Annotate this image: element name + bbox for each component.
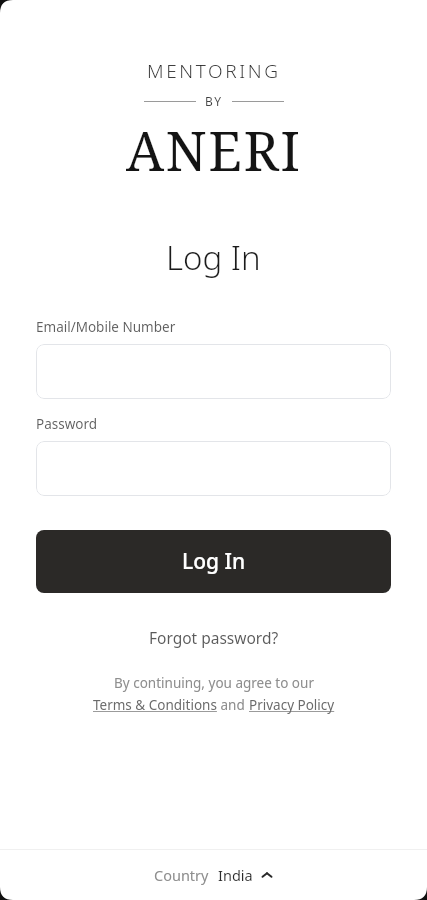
staticText: Log In [182,547,246,576]
staticText: Country [154,865,209,885]
staticText: BY [205,93,223,109]
staticText: and [217,696,249,714]
staticText: MENTORING [147,58,281,84]
button[interactable]: Forgot password? [139,623,289,652]
other: Change country [260,868,274,882]
staticText: India [218,865,253,885]
button[interactable]: Log In [36,530,391,593]
button[interactable] [36,441,391,496]
staticText: Forgot password? [149,627,279,648]
staticText: Privacy Policy [249,696,335,714]
staticText: Password [36,415,98,433]
staticText: ANERI [126,113,302,187]
staticText: Email/Mobile Number [36,318,176,336]
button[interactable]: Privacy Policy [249,696,335,714]
button[interactable]: Country [0,850,427,900]
button[interactable] [36,344,391,399]
staticText: Log In [166,235,261,280]
button[interactable]: Terms & Conditions [93,696,217,714]
staticText: Terms & Conditions [93,696,217,714]
staticText: By continuing, you agree to our [114,674,314,692]
